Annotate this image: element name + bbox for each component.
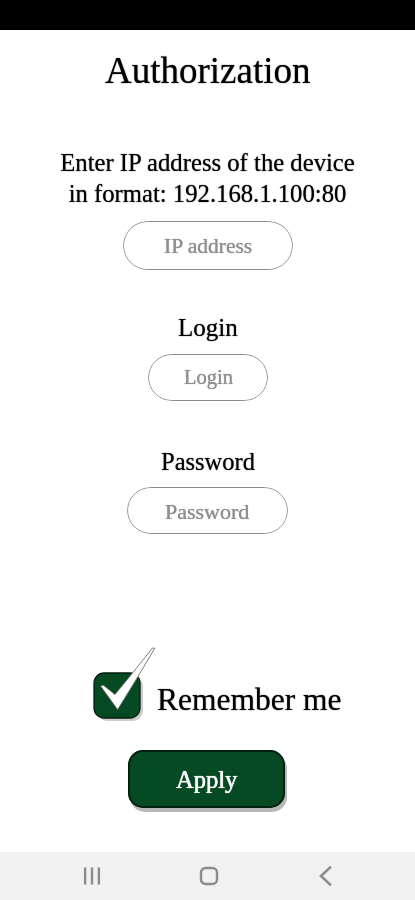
- button[interactable]: Home: [185, 852, 233, 900]
- staticText: Remember me: [157, 682, 342, 717]
- staticText: Authorization: [105, 50, 311, 91]
- button[interactable]: IP address: [123, 221, 293, 270]
- button[interactable]: Password: [127, 487, 288, 534]
- staticText: Login: [178, 314, 238, 342]
- staticText: IP address: [164, 234, 253, 258]
- button[interactable]: Apply: [128, 750, 285, 808]
- staticText: Login: [184, 366, 233, 389]
- button[interactable]: Remember me: [90, 645, 340, 725]
- button[interactable]: Back: [301, 852, 349, 900]
- staticText: Password: [161, 448, 255, 475]
- button[interactable]: Recent apps: [68, 852, 116, 900]
- staticText: Enter IP address of the device in format…: [60, 149, 355, 207]
- staticText: Apply: [176, 766, 238, 793]
- button[interactable]: Login: [148, 354, 268, 401]
- staticText: Password: [165, 499, 250, 523]
